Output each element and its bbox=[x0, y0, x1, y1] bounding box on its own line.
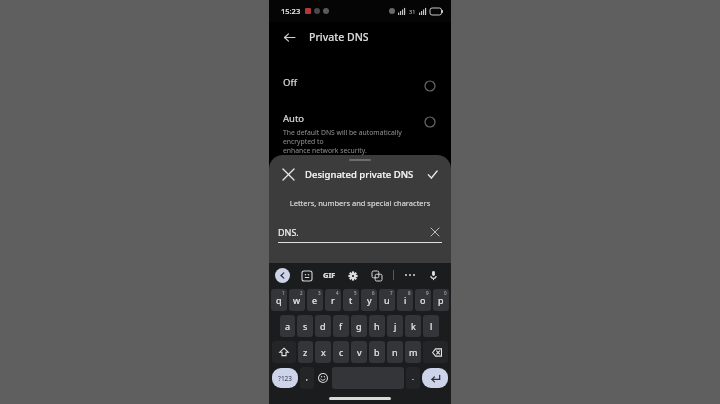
staticText: f bbox=[339, 320, 343, 332]
staticText: s bbox=[303, 320, 308, 332]
staticText: h bbox=[374, 320, 380, 332]
button[interactable]: j bbox=[387, 315, 403, 337]
button[interactable]: Stickers bbox=[299, 268, 314, 283]
staticText: 3 bbox=[318, 290, 321, 296]
staticText: ?123 bbox=[278, 374, 293, 383]
button[interactable]: More options bbox=[403, 268, 417, 282]
button[interactable]: Comma bbox=[300, 367, 314, 389]
button[interactable]: f bbox=[333, 315, 349, 337]
button[interactable]: n bbox=[387, 341, 403, 363]
button[interactable]: Designated private DNS bbox=[269, 167, 451, 196]
button[interactable]: s bbox=[297, 315, 313, 337]
staticText: i bbox=[404, 294, 407, 306]
button[interactable]: Auto bbox=[269, 110, 451, 157]
button[interactable]: Enter bbox=[422, 368, 448, 388]
staticText: l bbox=[430, 320, 433, 332]
button[interactable]: r bbox=[325, 289, 341, 311]
button[interactable]: w bbox=[289, 289, 305, 311]
staticText: u bbox=[384, 294, 390, 306]
button[interactable]: b bbox=[369, 341, 385, 363]
button[interactable]: Confirm bbox=[423, 165, 441, 183]
staticText: . bbox=[412, 373, 414, 383]
staticText: GIF bbox=[323, 270, 336, 280]
staticText: 15:23 bbox=[281, 6, 301, 16]
staticText: 7 bbox=[390, 290, 393, 296]
staticText: g bbox=[356, 320, 362, 332]
staticText: z bbox=[303, 346, 308, 358]
button[interactable]: i bbox=[397, 289, 413, 311]
button[interactable]: h bbox=[369, 315, 385, 337]
staticText: 9 bbox=[426, 290, 429, 296]
button[interactable]: x bbox=[315, 341, 331, 363]
staticText: Letters, numbers and special characters bbox=[269, 198, 451, 208]
button[interactable]: Voice input bbox=[426, 268, 441, 283]
staticText: Auto bbox=[283, 112, 305, 125]
staticText: d bbox=[320, 320, 326, 332]
button[interactable]: o bbox=[415, 289, 431, 311]
button[interactable]: Period bbox=[406, 367, 420, 389]
button[interactable]: Back bbox=[279, 27, 299, 47]
staticText: q bbox=[276, 294, 282, 306]
staticText: 0 bbox=[444, 290, 447, 296]
staticText: Designated private DNS bbox=[283, 169, 390, 182]
staticText: o bbox=[420, 294, 426, 306]
button[interactable]: ?123 bbox=[272, 368, 298, 388]
staticText: r bbox=[331, 294, 335, 306]
button[interactable]: Off bbox=[269, 74, 451, 96]
button[interactable]: Settings bbox=[345, 268, 360, 283]
button[interactable]: m bbox=[405, 341, 421, 363]
button[interactable]: z bbox=[298, 341, 313, 363]
staticText: n bbox=[392, 346, 398, 358]
staticText: p bbox=[438, 294, 444, 306]
staticText: c bbox=[339, 346, 344, 358]
staticText: k bbox=[411, 320, 416, 332]
button[interactable]: d bbox=[315, 315, 331, 337]
button[interactable]: y bbox=[361, 289, 377, 311]
button[interactable]: u bbox=[379, 289, 395, 311]
staticText: w bbox=[293, 294, 301, 306]
button[interactable]: Close bbox=[279, 165, 297, 183]
staticText: a bbox=[285, 320, 291, 332]
button[interactable]: k bbox=[405, 315, 421, 337]
staticText: m bbox=[409, 346, 418, 358]
staticText: 31 bbox=[409, 8, 416, 15]
staticText: 6 bbox=[372, 290, 375, 296]
staticText: b bbox=[374, 346, 380, 358]
staticText: 2 bbox=[300, 290, 303, 296]
button[interactable]: Expand toolbar bbox=[275, 268, 290, 283]
staticText: 1 bbox=[282, 290, 285, 296]
button[interactable]: Translate bbox=[369, 268, 384, 283]
staticText: Designated private DNS bbox=[305, 168, 414, 181]
staticText: j bbox=[394, 320, 397, 332]
button[interactable]: p bbox=[433, 289, 449, 311]
staticText: DNS. bbox=[278, 226, 299, 238]
button[interactable]: t bbox=[343, 289, 359, 311]
staticText: 5 bbox=[354, 290, 357, 296]
staticText: 8 bbox=[408, 290, 411, 296]
staticText: e bbox=[312, 294, 318, 306]
button[interactable]: q bbox=[271, 289, 287, 311]
staticText: t bbox=[349, 294, 353, 306]
button[interactable]: GIF bbox=[323, 270, 336, 280]
button[interactable]: c bbox=[333, 341, 349, 363]
button[interactable]: e bbox=[307, 289, 323, 311]
staticText: , bbox=[306, 373, 308, 383]
button[interactable]: l bbox=[423, 315, 439, 337]
button[interactable]: v bbox=[351, 341, 367, 363]
button[interactable]: Shift bbox=[272, 341, 296, 363]
button[interactable]: Clear text bbox=[428, 225, 442, 239]
button[interactable]: a bbox=[280, 315, 295, 337]
button[interactable]: g bbox=[351, 315, 367, 337]
button[interactable]: Emoji bbox=[316, 367, 330, 389]
staticText: v bbox=[357, 346, 362, 358]
staticText: Private DNS bbox=[309, 30, 369, 44]
staticText: 4 bbox=[336, 290, 339, 296]
staticText: Off bbox=[283, 76, 297, 89]
staticText: x bbox=[321, 346, 326, 358]
staticText: y bbox=[367, 294, 372, 306]
button[interactable]: Backspace bbox=[423, 341, 448, 363]
